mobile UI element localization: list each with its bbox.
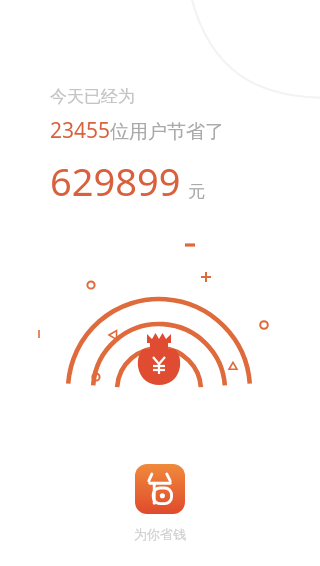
staticText: 23455位用户节省了 (50, 116, 225, 145)
staticText: 元 (188, 181, 205, 202)
button[interactable]: 省钱 app icon (135, 464, 185, 514)
staticText: 629899 (50, 155, 181, 207)
staticText: 为你省钱 (134, 526, 186, 542)
other: 省钱 app icon (143, 472, 177, 506)
staticText: 今天已经为 (50, 86, 135, 107)
